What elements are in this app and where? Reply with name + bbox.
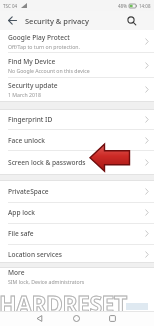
staticText: 1 March 2018 xyxy=(8,91,41,98)
staticText: 14:08 xyxy=(139,3,151,9)
staticText: SIM lock, Device administrators xyxy=(8,278,85,285)
staticText: 48% xyxy=(118,3,127,9)
staticText: PrivateSpace xyxy=(8,187,49,196)
staticText: HARDRESET xyxy=(0,288,127,319)
staticText: Fingerprint ID xyxy=(8,115,53,124)
button[interactable] xyxy=(36,315,43,322)
staticText: More xyxy=(8,268,25,277)
button[interactable]: More xyxy=(0,268,154,285)
staticText: App lock xyxy=(8,208,35,217)
staticText: Face unlock xyxy=(8,136,45,145)
button[interactable]: Face unlock xyxy=(0,130,154,150)
staticText: Security update xyxy=(8,81,58,90)
button[interactable] xyxy=(8,16,17,25)
staticText: No Google Account on this device xyxy=(8,67,90,74)
staticText: TSC 04 xyxy=(3,3,18,9)
button[interactable]: Fingerprint ID xyxy=(0,110,154,129)
button[interactable]: Find My Device xyxy=(0,53,154,77)
staticText: Google Play Protect xyxy=(8,33,70,42)
staticText: Location services xyxy=(8,250,63,259)
button[interactable] xyxy=(109,315,116,322)
button[interactable]: Location services xyxy=(0,244,154,265)
staticText: File safe xyxy=(8,229,34,238)
button[interactable]: Google Play Protect xyxy=(0,30,154,53)
staticText: Security & privacy xyxy=(25,16,90,26)
button[interactable]: Security update xyxy=(0,77,154,101)
staticText: Screen lock & passwords xyxy=(8,158,86,167)
button[interactable]: Screen lock & passwords xyxy=(0,151,154,174)
button[interactable]: PrivateSpace xyxy=(0,181,154,202)
button[interactable] xyxy=(73,315,80,322)
button[interactable]: File safe xyxy=(0,223,154,244)
button[interactable]: App lock xyxy=(0,202,154,223)
staticText: Off/Tap to turn on protection. xyxy=(8,43,80,50)
button[interactable] xyxy=(127,16,137,26)
staticText: Find My Device xyxy=(8,57,56,66)
